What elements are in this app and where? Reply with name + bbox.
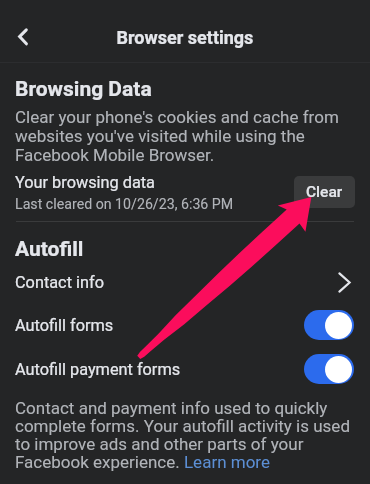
button[interactable]: Your browsing data — [0, 170, 370, 216]
button[interactable]: Clear — [294, 176, 355, 208]
staticText: Contact info — [15, 273, 104, 292]
staticText: Autofill — [15, 237, 84, 262]
button[interactable]: Back — [4, 18, 41, 55]
button[interactable] — [304, 310, 354, 340]
staticText: Your browsing data — [15, 173, 155, 192]
staticText: Last cleared on 10/26/23, 6:36 PM — [15, 196, 234, 213]
staticText: Autofill payment forms — [15, 360, 181, 379]
button[interactable]: Autofill payment forms — [0, 347, 370, 391]
staticText: Contact and payment info used to quickly… — [15, 398, 355, 473]
button[interactable]: Contact info — [0, 264, 370, 301]
other: Open contact info — [338, 272, 351, 293]
staticText: Browsing Data — [15, 77, 152, 102]
staticText: Autofill forms — [15, 316, 114, 335]
button[interactable] — [304, 354, 354, 384]
button[interactable]: Autofill forms — [0, 303, 370, 347]
staticText: Browser settings — [0, 27, 370, 48]
staticText: Clear — [306, 183, 343, 201]
staticText: Clear your phone's cookies and cache fro… — [15, 107, 355, 166]
